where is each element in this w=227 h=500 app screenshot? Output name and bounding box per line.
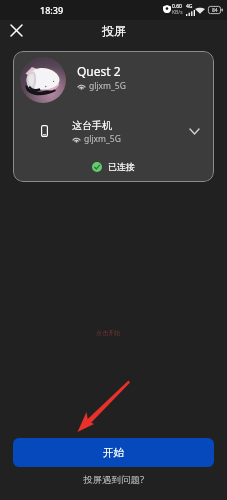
staticText: 18:39: [40, 4, 64, 16]
staticText: 点击开始: [96, 329, 120, 337]
button[interactable]: 开始: [13, 438, 214, 467]
staticText: gljxm_5G: [89, 80, 126, 92]
button[interactable]: Close: [5, 19, 27, 41]
staticText: 84: [212, 7, 218, 14]
button[interactable]: Expand: [185, 122, 203, 140]
staticText: gljxm_5G: [84, 133, 121, 145]
staticText: Quest 2: [77, 63, 121, 79]
button[interactable]: 这台手机: [13, 110, 214, 151]
staticText: 已连接: [108, 161, 135, 172]
staticText: KB/s: [172, 9, 183, 16]
staticText: 投屏遇到问题?: [83, 473, 145, 486]
staticText: 这台手机: [72, 119, 112, 132]
button[interactable]: Quest 2: [13, 51, 214, 109]
staticText: 开始: [103, 446, 124, 459]
staticText: 0.60: [172, 3, 182, 10]
staticText: 4G: [186, 3, 193, 10]
button[interactable]: 投屏遇到问题?: [63, 470, 164, 488]
staticText: 投屏: [102, 23, 126, 38]
